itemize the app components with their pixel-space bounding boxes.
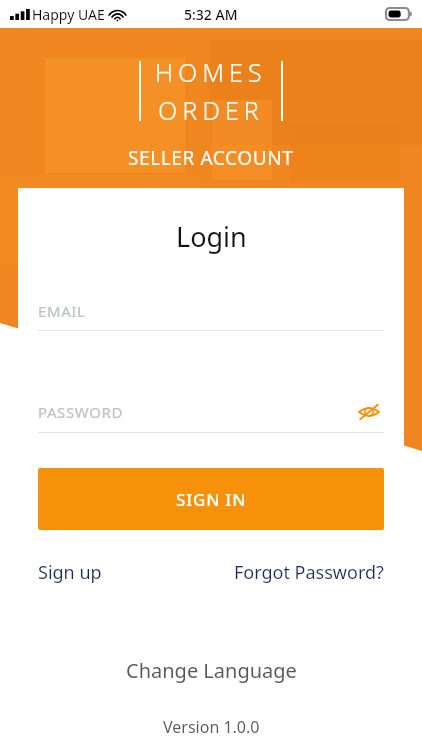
staticText: Happy UAE [32,5,105,24]
staticText: SIGN IN [176,488,247,511]
staticText: Version 1.0.0 [163,716,260,738]
button[interactable]: EMAIL [38,301,384,331]
button[interactable]: Forgot Password? [234,556,384,589]
staticText: HOMES [155,55,267,89]
staticText: EMAIL [38,301,86,321]
button[interactable]: Change Language [110,651,313,690]
staticText: Forgot Password? [234,560,384,585]
button[interactable]: PASSWORD [38,397,384,427]
staticText: SELLER ACCOUNT [128,145,294,171]
staticText: ORDER [158,93,264,127]
staticText: PASSWORD [38,402,354,422]
staticText: Sign up [38,560,102,585]
staticText: Login [176,218,247,255]
button[interactable]: Show password [354,397,384,427]
staticText: Change Language [126,657,297,684]
button[interactable]: SIGN IN [38,468,384,530]
staticText: 5:32 AM [184,5,238,24]
button[interactable]: Sign up [38,556,102,589]
